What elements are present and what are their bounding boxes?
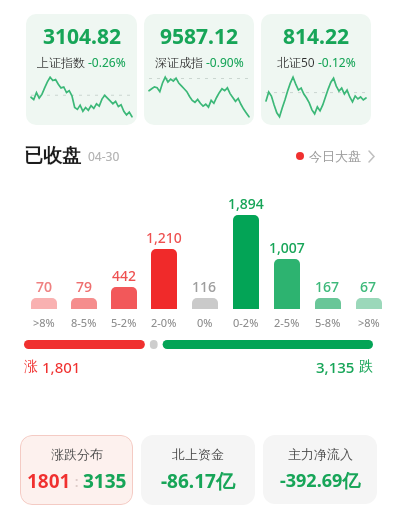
staticText: 67 bbox=[360, 277, 377, 296]
staticText: 上证指数 bbox=[37, 55, 85, 70]
staticText: 今日大盘 bbox=[309, 148, 361, 164]
staticText: -0.90% bbox=[206, 54, 244, 70]
staticText: 北证50 bbox=[277, 54, 315, 70]
button[interactable]: 9587.12 bbox=[144, 14, 254, 125]
staticText: 跌 bbox=[359, 358, 373, 376]
staticText: 442 bbox=[112, 266, 137, 285]
button[interactable]: 主力净流入 bbox=[263, 435, 377, 504]
staticText: 8-5% bbox=[71, 315, 97, 330]
staticText: 0% bbox=[197, 315, 213, 330]
staticText: -86.17亿 bbox=[161, 468, 235, 494]
staticText: 814.22 bbox=[283, 22, 349, 51]
staticText: -392.69亿 bbox=[280, 468, 361, 493]
staticText: 主力净流入 bbox=[288, 446, 353, 462]
staticText: 04-30 bbox=[88, 148, 120, 164]
staticText: 涨 bbox=[24, 358, 38, 376]
staticText: 1,894 bbox=[228, 194, 264, 213]
staticText: 9587.12 bbox=[160, 22, 238, 51]
staticText: 2-5% bbox=[274, 315, 300, 330]
button[interactable]: 814.22 bbox=[261, 14, 371, 125]
staticText: 167 bbox=[315, 277, 340, 296]
staticText: 1,801 bbox=[42, 357, 81, 377]
staticText: 1,210 bbox=[146, 228, 182, 247]
staticText: 3104.82 bbox=[43, 22, 121, 51]
staticText: 116 bbox=[192, 277, 217, 296]
button[interactable]: 涨跌分布 bbox=[20, 435, 133, 505]
button[interactable]: 北上资金 bbox=[141, 435, 255, 505]
staticText: 2-0% bbox=[151, 315, 177, 330]
staticText: 北上资金 bbox=[172, 446, 224, 462]
button[interactable]: 今日大盘 bbox=[294, 144, 377, 168]
staticText: 79 bbox=[76, 277, 93, 296]
staticText: 已收盘 bbox=[24, 144, 81, 168]
staticText: 1801 bbox=[27, 468, 71, 494]
staticText: -0.26% bbox=[88, 54, 126, 70]
staticText: -0.12% bbox=[318, 54, 356, 70]
staticText: >8% bbox=[358, 315, 380, 330]
staticText: : bbox=[71, 472, 83, 491]
staticText: 0-2% bbox=[233, 315, 259, 330]
staticText: 3,135 bbox=[316, 357, 355, 377]
staticText: 1,007 bbox=[269, 238, 305, 257]
staticText: >8% bbox=[33, 315, 55, 330]
staticText: 深证成指 bbox=[155, 55, 203, 70]
staticText: 3135 bbox=[83, 468, 127, 494]
staticText: 70 bbox=[36, 277, 53, 296]
staticText: 涨跌分布 bbox=[51, 446, 103, 462]
other: Advance decline ratio bbox=[24, 340, 373, 349]
button[interactable]: 3104.82 bbox=[26, 14, 137, 125]
staticText: 5-8% bbox=[315, 315, 341, 330]
staticText: 5-2% bbox=[111, 315, 137, 330]
